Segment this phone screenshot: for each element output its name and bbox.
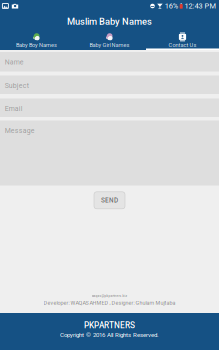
button[interactable]: Baby Boy Names <box>0 31 73 50</box>
staticText: 16% <box>165 2 178 10</box>
button[interactable]: Baby Girl Names <box>73 31 146 50</box>
staticText: Copyright © 2016 All Rights Reserved. <box>60 331 159 339</box>
staticText: Name <box>5 58 24 66</box>
staticText: Baby Boy Names <box>16 42 57 48</box>
staticText: Message <box>5 126 35 135</box>
staticText: PKPARTNERS <box>84 320 135 330</box>
button[interactable]: SEND <box>94 192 125 209</box>
button[interactable]: Contact Us <box>146 31 219 50</box>
staticText: Subject <box>5 81 29 90</box>
staticText: Email <box>5 104 23 113</box>
button[interactable]: Subject <box>0 75 219 94</box>
button[interactable]: Message <box>0 120 219 185</box>
staticText: SEND <box>101 197 118 204</box>
staticText: waqas@pkpartners.biz <box>91 294 127 298</box>
button[interactable]: Name <box>0 52 219 71</box>
button[interactable]: Email <box>0 98 219 117</box>
staticText: Developer: WAQAS AHMED , Designer: Ghula… <box>43 300 175 306</box>
staticText: Muslim Baby Names <box>67 16 152 27</box>
staticText: 12:43 PM <box>185 2 217 10</box>
staticText: Contact Us <box>168 42 196 48</box>
staticText: Baby Girl Names <box>89 42 129 48</box>
